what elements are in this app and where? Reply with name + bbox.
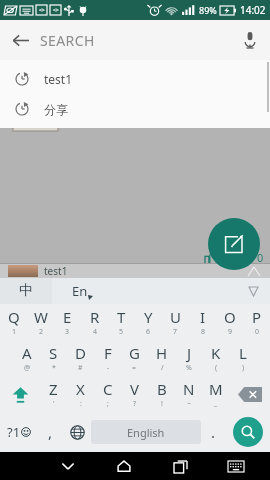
button[interactable]: Y [135,304,162,340]
button[interactable]: N [175,376,202,412]
button[interactable]: test1 [0,64,270,94]
button[interactable]: Backspace [229,376,270,412]
staticText: O [224,307,236,327]
staticText: H [156,343,168,363]
button[interactable]: Home [96,452,152,480]
staticText: 2 [39,327,44,337]
staticText: ~ [187,399,192,409]
staticText: Z [49,379,58,399]
staticText: E [63,307,72,327]
button[interactable]: Shift [0,376,40,412]
button[interactable]: K [202,340,229,376]
button[interactable]: V [121,376,148,412]
button[interactable]: 分享 [0,94,270,124]
staticText: English [127,425,165,440]
staticText: 9 [228,327,233,337]
button[interactable]: E [54,304,81,340]
staticText: 分享 [44,102,68,117]
button[interactable]: Switch keyboard [208,452,264,480]
staticText: <> [53,7,59,14]
staticText: P [252,307,262,327]
staticText: T [117,307,126,327]
staticText: U [170,307,181,327]
staticText: R [90,307,100,327]
button[interactable]: SEARCH [40,20,230,60]
staticText: ( [215,363,218,373]
staticText: J [187,343,192,363]
button[interactable]: L [229,340,256,376]
button[interactable]: . [201,412,226,452]
staticText: W [34,307,48,327]
button[interactable]: Change language [63,412,91,452]
button[interactable]: U [162,304,189,340]
button[interactable]: D [67,340,94,376]
button[interactable]: Q [0,304,27,340]
staticText: M [209,379,223,399]
button[interactable]: A [13,340,40,376]
staticText: ) [242,363,245,373]
button[interactable]: Recent apps [152,452,208,480]
staticText: A [22,343,32,363]
button[interactable]: En [52,278,112,304]
staticText: ? [133,399,137,409]
button[interactable]: P [243,304,270,340]
button[interactable]: Compose [208,218,260,270]
staticText: <> [39,7,45,14]
button[interactable]: W [27,304,54,340]
button[interactable]: ?1 [0,412,38,452]
staticText: ' [53,399,55,409]
staticText: - [107,363,110,373]
button[interactable]: M [202,376,229,412]
staticText: , [48,422,53,442]
button[interactable]: C [94,376,121,412]
staticText: D [75,343,86,363]
button[interactable]: test1 [0,264,270,278]
staticText: L [239,343,247,363]
button[interactable]: S [40,340,67,376]
staticText: ; [107,399,109,409]
staticText: * [52,363,56,373]
button[interactable]: English [91,420,201,444]
staticText: test1 [44,71,73,87]
button[interactable]: B [148,376,175,412]
button[interactable]: , [38,412,63,452]
staticText: 0 [255,327,260,337]
button[interactable]: Z [40,376,67,412]
staticText: @ [24,363,31,373]
staticText: 6 [146,327,151,337]
staticText: 3 [65,327,70,337]
staticText: 0 [257,250,264,265]
staticText: ?1 [7,423,21,441]
button[interactable]: H [148,340,175,376]
staticText: # [78,363,83,373]
staticText: _ [214,399,218,409]
button[interactable]: G [121,340,148,376]
button[interactable]: 中 [0,278,52,304]
staticText: / [161,363,164,373]
staticText: B [157,379,167,399]
staticText: = [132,363,137,373]
button[interactable]: Voice search [230,20,270,60]
staticText: Y [144,307,153,327]
staticText: ! [161,399,163,409]
button[interactable]: J [175,340,202,376]
staticText: 89% [199,4,217,16]
staticText: 1 [12,327,17,337]
staticText: 8 [201,327,206,337]
button[interactable]: R [81,304,108,340]
button[interactable]: Back [0,20,40,60]
button[interactable]: X [67,376,94,412]
staticText: Q [8,307,20,327]
button[interactable]: Back [40,452,96,480]
button[interactable]: Search [233,417,263,447]
staticText: S [49,343,58,363]
button[interactable]: Hide suggestions [236,278,270,304]
staticText: N [183,379,195,399]
staticText: 7 [173,327,178,337]
staticText: X [76,379,85,399]
button[interactable]: I [189,304,216,340]
button[interactable]: O [216,304,243,340]
button[interactable]: F [94,340,121,376]
button[interactable]: T [108,304,135,340]
button[interactable]: Like [202,247,223,268]
